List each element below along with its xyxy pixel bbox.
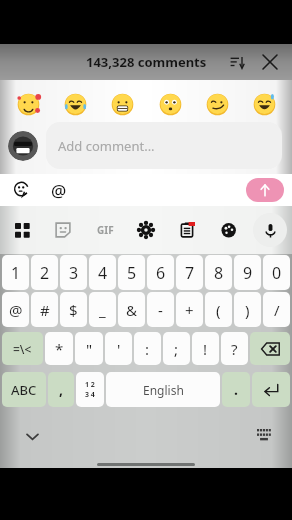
button[interactable]: 4 xyxy=(89,255,116,290)
button[interactable]: English xyxy=(106,372,220,407)
button[interactable]: Voice input xyxy=(253,213,287,247)
button[interactable]: - xyxy=(147,292,174,327)
button[interactable]: & xyxy=(118,292,145,327)
button[interactable]: 7 xyxy=(176,255,203,290)
button[interactable]: Send comment xyxy=(246,178,284,202)
button[interactable]: Stickers xyxy=(9,177,35,203)
button[interactable]: ) xyxy=(234,292,261,327)
button[interactable]: Settings xyxy=(129,213,163,247)
staticText: - xyxy=(158,300,163,320)
button[interactable]: Clipboard xyxy=(170,213,204,247)
staticText: $ xyxy=(69,300,78,320)
button[interactable]: 5 xyxy=(118,255,145,290)
button[interactable]: Hide keyboard xyxy=(19,423,45,449)
staticText: 5 xyxy=(127,262,137,284)
button[interactable]: 9 xyxy=(234,255,261,290)
button[interactable]: ' xyxy=(105,332,132,365)
staticText: 8 xyxy=(214,262,224,284)
staticText: _ xyxy=(99,300,106,320)
button[interactable]: 8 xyxy=(205,255,232,290)
button[interactable]: _ xyxy=(89,292,116,327)
button[interactable]: , xyxy=(48,372,74,407)
staticText: + xyxy=(185,300,194,320)
staticText: ABC xyxy=(11,381,37,399)
staticText: 1 xyxy=(11,262,21,284)
staticText: " xyxy=(86,339,93,359)
staticText: English xyxy=(143,382,184,398)
staticText: ) xyxy=(245,300,250,320)
button[interactable]: React with emoji 4 xyxy=(151,85,189,123)
button[interactable]: Keyboard menu xyxy=(5,213,39,247)
button[interactable]: 3 xyxy=(60,255,87,290)
button[interactable]: " xyxy=(75,332,103,365)
staticText: ? xyxy=(231,339,238,359)
staticText: 4 xyxy=(98,262,108,284)
staticText: GIF xyxy=(97,223,114,237)
button[interactable]: Backspace xyxy=(250,332,290,365)
staticText: & xyxy=(126,300,137,320)
staticText: @ xyxy=(9,300,23,320)
staticText: 6 xyxy=(156,262,166,284)
staticText: ! xyxy=(203,339,208,359)
button[interactable]: Switch keyboard xyxy=(251,423,277,449)
button[interactable]: Close xyxy=(256,48,284,76)
staticText: 7 xyxy=(185,262,195,284)
staticText: 1 2 xyxy=(85,380,95,390)
button[interactable]: React with emoji 2 xyxy=(56,85,94,123)
staticText: # xyxy=(40,300,50,320)
button[interactable]: ( xyxy=(205,292,232,327)
staticText: * xyxy=(55,339,64,359)
button[interactable]: 6 xyxy=(147,255,174,290)
staticText: . xyxy=(234,380,238,399)
button[interactable]: React with emoji 1 xyxy=(9,85,47,123)
staticText: =\< xyxy=(13,341,32,357)
button[interactable]: Sticker picker xyxy=(46,213,80,247)
staticText: 2 xyxy=(40,262,50,284)
staticText: , xyxy=(59,380,63,399)
button[interactable]: ; xyxy=(163,332,190,365)
staticText: 9 xyxy=(243,262,253,284)
button[interactable]: ABC xyxy=(2,372,46,407)
button[interactable]: . xyxy=(222,372,250,407)
button[interactable]: # xyxy=(31,292,58,327)
staticText: Add comment... xyxy=(58,137,155,155)
staticText: 0 xyxy=(272,262,282,284)
button[interactable]: Your profile picture xyxy=(8,131,38,161)
button[interactable]: Numbers xyxy=(76,372,104,407)
staticText: 3 4 xyxy=(85,390,95,400)
button[interactable]: Sort comments xyxy=(224,49,250,75)
button[interactable]: : xyxy=(134,332,161,365)
button[interactable]: + xyxy=(176,292,203,327)
button[interactable]: React with emoji 6 xyxy=(245,85,283,123)
button[interactable]: 1 xyxy=(2,255,29,290)
button[interactable]: 143,328 comments xyxy=(86,53,207,71)
button[interactable]: React with emoji 5 xyxy=(198,85,236,123)
staticText: 3 xyxy=(69,262,79,284)
button[interactable]: / xyxy=(263,292,290,327)
staticText: ' xyxy=(117,339,121,359)
staticText: ; xyxy=(174,339,179,359)
button[interactable]: 2 xyxy=(31,255,58,290)
staticText: ( xyxy=(216,300,221,320)
button[interactable]: =\< xyxy=(2,332,43,365)
button[interactable]: @ xyxy=(2,292,29,327)
button[interactable]: Themes xyxy=(212,213,246,247)
button[interactable]: $ xyxy=(60,292,87,327)
button[interactable]: ? xyxy=(221,332,248,365)
staticText: : xyxy=(145,339,150,359)
button[interactable]: 0 xyxy=(263,255,290,290)
button[interactable]: Enter xyxy=(252,372,290,407)
button[interactable]: ! xyxy=(192,332,219,365)
button[interactable]: Mention xyxy=(46,177,72,203)
button[interactable]: GIF xyxy=(88,213,122,247)
button[interactable]: * xyxy=(45,332,73,365)
staticText: / xyxy=(274,300,280,320)
staticText: @ xyxy=(51,179,67,202)
button[interactable]: Add comment... xyxy=(46,122,282,169)
button[interactable]: React with emoji 3 xyxy=(103,85,141,123)
